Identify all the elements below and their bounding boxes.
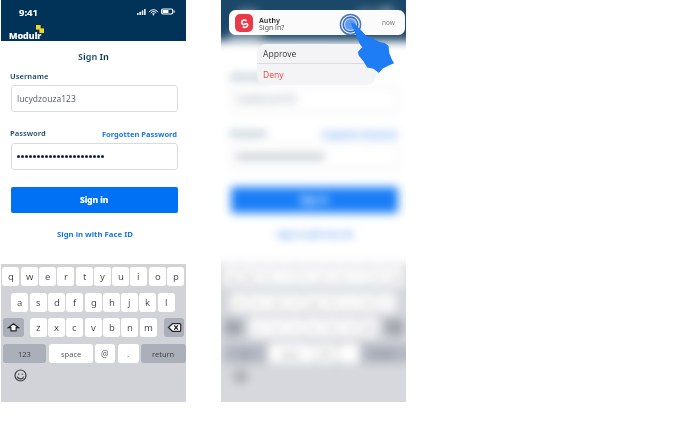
button[interactable]: a (11, 293, 28, 312)
button[interactable]: i (130, 267, 147, 286)
staticText: u (118, 270, 124, 283)
button[interactable]: w (21, 267, 38, 286)
staticText: d (54, 296, 60, 309)
button[interactable]: 123 (223, 344, 266, 363)
staticText: 9:41 (19, 6, 38, 19)
button[interactable]: @ (95, 344, 115, 363)
button[interactable]: lucydzouza123 (231, 85, 398, 112)
button[interactable]: m (360, 318, 377, 337)
button[interactable]: e (39, 267, 56, 286)
button[interactable]: 123 (3, 344, 46, 363)
other: Tap notification (350, 22, 395, 73)
button[interactable]: Emoji keyboard (234, 369, 247, 382)
button[interactable]: Approve (257, 44, 376, 63)
button[interactable]: . (338, 344, 359, 363)
button[interactable]: r (277, 267, 294, 286)
button[interactable]: Shift (223, 318, 244, 337)
button[interactable]: g (305, 293, 322, 312)
button[interactable]: v (305, 318, 322, 337)
button[interactable]: t (296, 267, 313, 286)
button[interactable] (11, 143, 178, 170)
button[interactable]: g (85, 293, 102, 312)
button[interactable]: space (49, 344, 93, 363)
button[interactable]: z (30, 318, 47, 337)
staticText: x (54, 321, 60, 334)
button[interactable]: x (268, 318, 285, 337)
button[interactable]: d (48, 293, 65, 312)
button[interactable]: lucydzouza123 (11, 85, 178, 112)
button[interactable]: o (149, 267, 166, 286)
button[interactable]: l (378, 293, 395, 312)
button[interactable]: k (139, 293, 156, 312)
button[interactable]: space (269, 344, 313, 363)
button[interactable]: w (241, 267, 258, 286)
button[interactable]: Deny (257, 64, 376, 85)
button[interactable]: f (66, 293, 83, 312)
button[interactable]: j (121, 293, 138, 312)
button[interactable]: @ (315, 344, 335, 363)
button[interactable]: p (167, 267, 184, 286)
button[interactable]: y (94, 267, 111, 286)
button[interactable]: n (121, 318, 138, 337)
button[interactable]: Forgotten Password (231, 129, 398, 139)
button[interactable]: x (48, 318, 65, 337)
button[interactable]: u (112, 267, 129, 286)
button[interactable]: h (323, 293, 340, 312)
button[interactable]: Emoji keyboard (14, 369, 27, 382)
button[interactable]: t (76, 267, 93, 286)
staticText: z (36, 321, 41, 334)
button[interactable]: y (314, 267, 331, 286)
button[interactable]: h (103, 293, 120, 312)
button[interactable]: b (323, 318, 340, 337)
staticText: Username (10, 71, 49, 81)
button[interactable]: d (268, 293, 285, 312)
button[interactable] (231, 143, 398, 170)
button[interactable]: r (57, 267, 74, 286)
button[interactable]: . (118, 344, 139, 363)
button[interactable]: c (286, 318, 303, 337)
button[interactable]: Delete (384, 318, 404, 337)
button[interactable]: Forgotten Password (11, 129, 178, 139)
button[interactable]: Sign in (11, 187, 178, 213)
button[interactable]: Shift (3, 318, 24, 337)
button[interactable]: z (250, 318, 267, 337)
button[interactable]: Sign in with Face ID (11, 229, 178, 240)
button[interactable]: Sign in (231, 187, 398, 213)
button[interactable]: m (140, 318, 157, 337)
button[interactable]: l (158, 293, 175, 312)
staticText: @ (101, 348, 109, 360)
button[interactable]: q (2, 267, 19, 286)
button[interactable]: n (341, 318, 358, 337)
button[interactable]: c (66, 318, 83, 337)
button[interactable]: b (103, 318, 120, 337)
button[interactable]: k (359, 293, 376, 312)
staticText: m (144, 321, 153, 334)
button[interactable]: Authy (229, 10, 405, 35)
button[interactable]: i (350, 267, 367, 286)
staticText: Sign in (80, 194, 109, 206)
button[interactable]: a (231, 293, 248, 312)
button[interactable]: return (361, 344, 406, 363)
button[interactable]: p (387, 267, 404, 286)
button[interactable]: o (369, 267, 386, 286)
staticText: return (372, 349, 395, 359)
button[interactable]: u (332, 267, 349, 286)
button[interactable]: return (141, 344, 186, 363)
button[interactable]: s (250, 293, 267, 312)
button[interactable]: v (85, 318, 102, 337)
button[interactable]: e (259, 267, 276, 286)
button[interactable]: j (341, 293, 358, 312)
staticText: p (173, 270, 179, 283)
button[interactable]: Sign in with Face ID (231, 229, 398, 240)
button[interactable]: q (222, 267, 239, 286)
button[interactable]: Delete (164, 318, 184, 337)
button[interactable]: f (286, 293, 303, 312)
button[interactable]: s (30, 293, 47, 312)
